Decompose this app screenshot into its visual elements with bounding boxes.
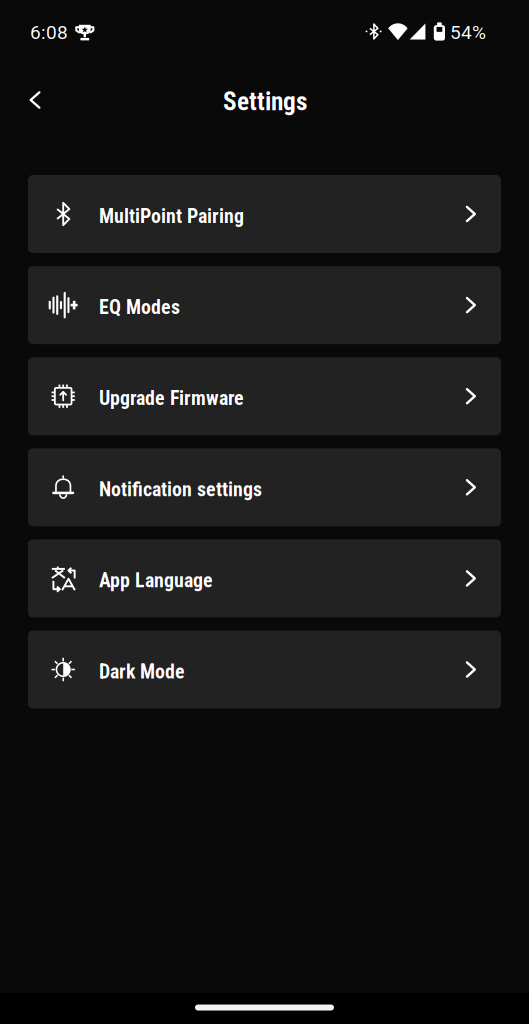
staticText: Dark Mode [99, 660, 185, 683]
staticText: App Language [99, 569, 213, 592]
button[interactable]: Notification settings [28, 448, 501, 526]
button[interactable]: Dark Mode [28, 630, 501, 708]
button[interactable]: Back [13, 78, 57, 122]
staticText: Settings [223, 87, 308, 116]
staticText: Notification settings [99, 478, 262, 501]
button[interactable]: EQ Modes [28, 266, 501, 344]
staticText: 6:08 [30, 21, 68, 44]
staticText: MultiPoint Pairing [99, 204, 244, 228]
staticText: Upgrade Firmware [99, 387, 244, 410]
staticText: 54% [450, 21, 486, 44]
staticText: EQ Modes [99, 296, 180, 319]
button[interactable]: App Language [28, 539, 501, 617]
button[interactable]: MultiPoint Pairing [28, 175, 501, 253]
button[interactable]: Upgrade Firmware [28, 357, 501, 435]
